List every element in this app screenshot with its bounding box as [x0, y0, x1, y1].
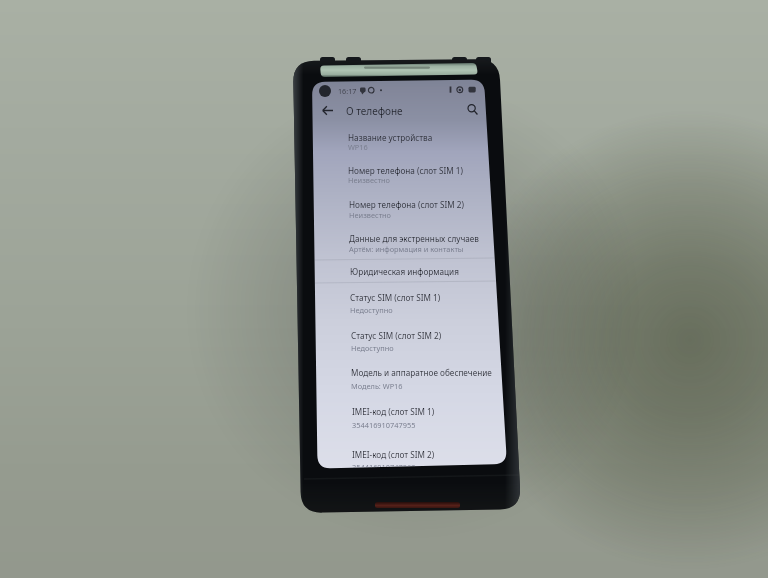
- button[interactable]: [316, 362, 506, 395]
- staticText: Статус SIM (слот SIM 2): [351, 330, 442, 341]
- staticText: WP16: [348, 142, 368, 152]
- staticText: Номер телефона (слот SIM 1): [348, 165, 463, 176]
- button[interactable]: Назад: [316, 99, 338, 121]
- button[interactable]: [314, 194, 504, 227]
- button[interactable]: [313, 127, 503, 160]
- staticText: 16:17: [338, 86, 357, 96]
- staticText: Данные для экстренных случаев: [349, 233, 479, 244]
- staticText: Название устройства: [348, 132, 433, 143]
- staticText: О телефоне: [346, 104, 403, 118]
- button[interactable]: [317, 401, 507, 434]
- staticText: Статус SIM (слот SIM 1): [350, 292, 441, 303]
- button[interactable]: [313, 160, 503, 193]
- staticText: Неизвестно: [348, 175, 391, 185]
- button[interactable]: [316, 325, 506, 358]
- staticText: 354416910747963: [352, 462, 416, 472]
- staticText: Модель: WP16: [351, 381, 403, 391]
- button[interactable]: [314, 228, 504, 261]
- staticText: Артём: информация и контакты: [349, 244, 464, 254]
- button[interactable]: [315, 287, 505, 320]
- staticText: Номер телефона (слот SIM 2): [349, 199, 464, 210]
- button[interactable]: [315, 260, 505, 283]
- button[interactable]: Поиск: [461, 98, 483, 120]
- staticText: Недоступно: [350, 305, 393, 315]
- staticText: 354416910747955: [352, 420, 416, 430]
- staticText: IMEI-код (слот SIM 2): [352, 449, 435, 460]
- button[interactable]: [317, 444, 507, 474]
- staticText: Неизвестно: [349, 210, 392, 220]
- staticText: Модель и аппаратное обеспечение: [351, 367, 492, 378]
- staticText: IMEI-код (слот SIM 1): [352, 406, 435, 417]
- staticText: Юридическая информация: [350, 266, 459, 277]
- staticText: Недоступно: [351, 343, 394, 353]
